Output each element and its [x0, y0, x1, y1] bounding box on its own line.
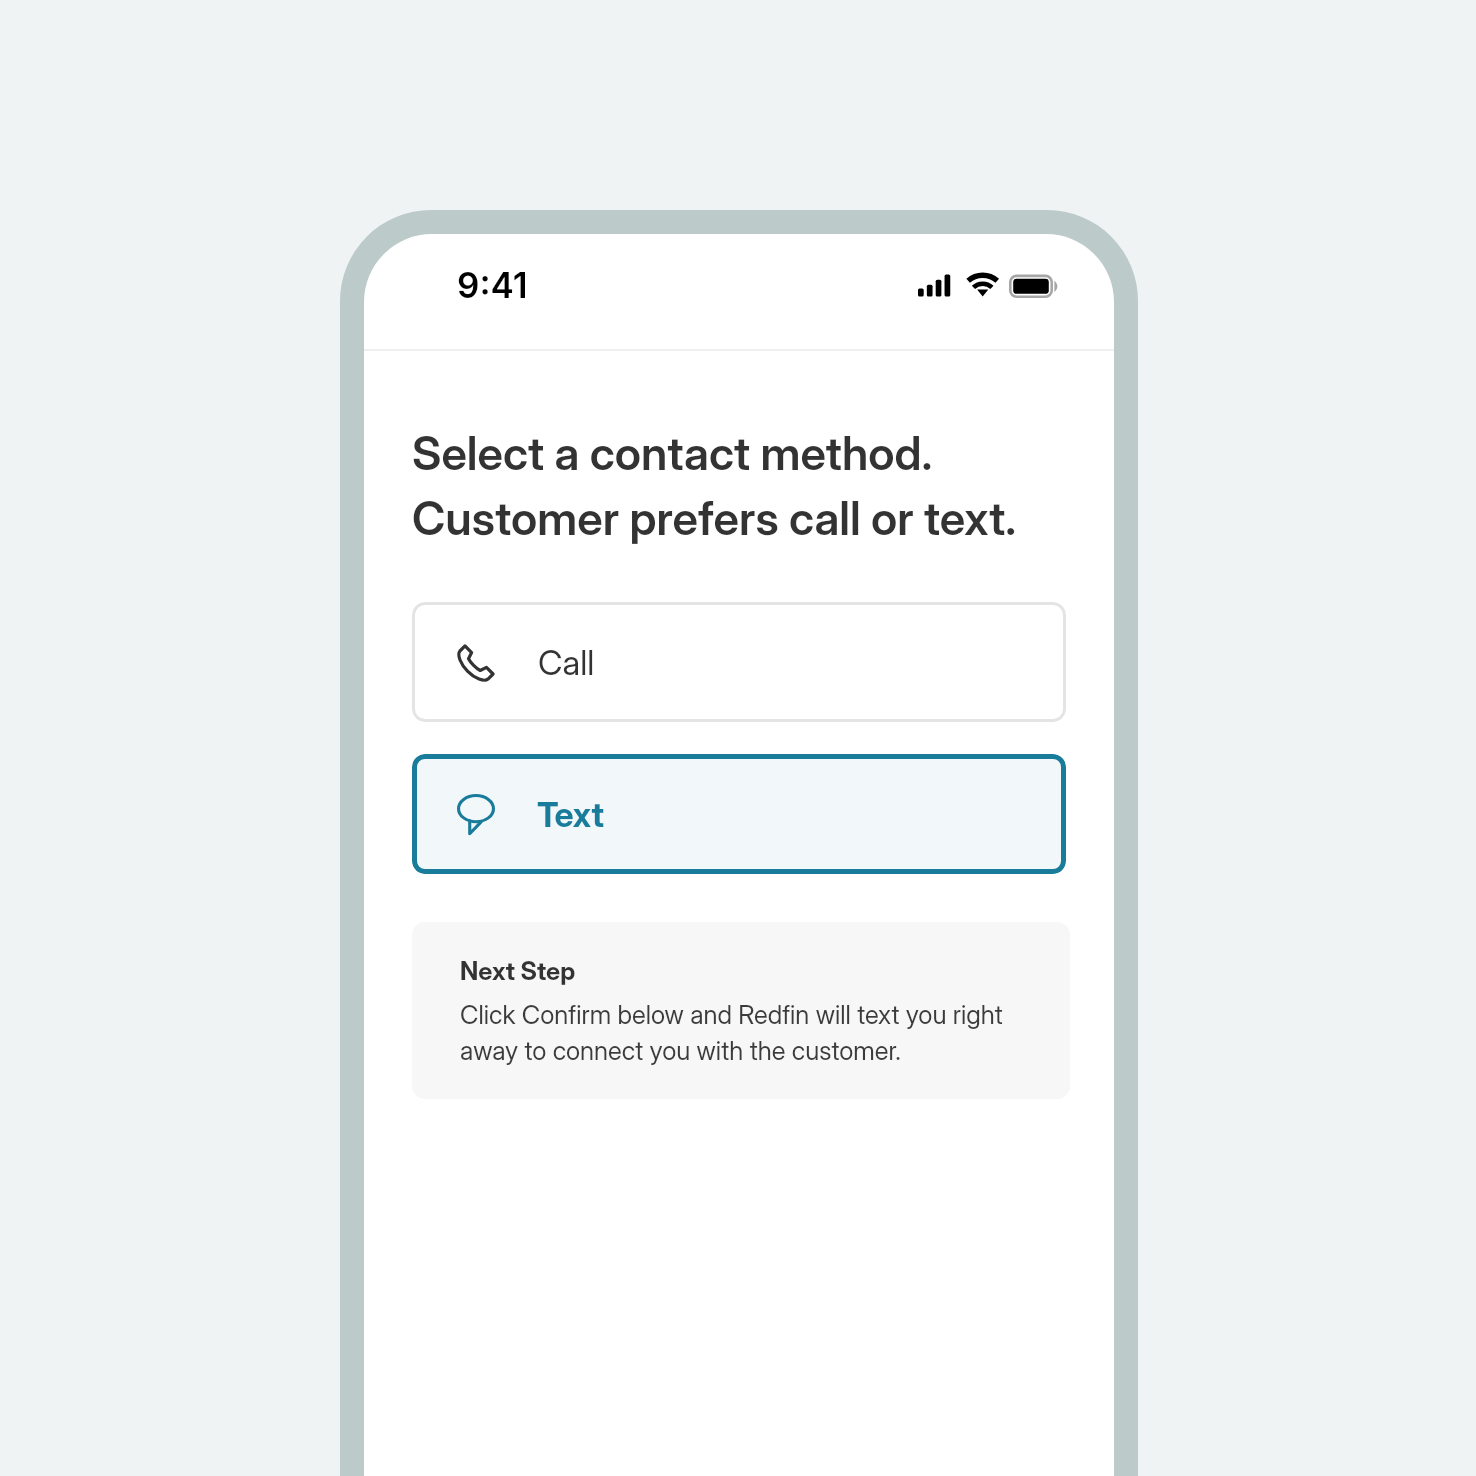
staticText: Call	[538, 642, 595, 683]
staticText: 9:41	[457, 264, 528, 306]
button[interactable]: Call	[412, 602, 1066, 722]
staticText: Select a contact method. Customer prefer…	[412, 418, 1102, 548]
other: Status icons	[918, 272, 1059, 299]
staticText: Text	[537, 794, 605, 835]
staticText: Next Step	[460, 956, 576, 986]
button[interactable]: Text	[412, 754, 1066, 874]
staticText: Click Confirm below and Redfin will text…	[460, 995, 1040, 1067]
